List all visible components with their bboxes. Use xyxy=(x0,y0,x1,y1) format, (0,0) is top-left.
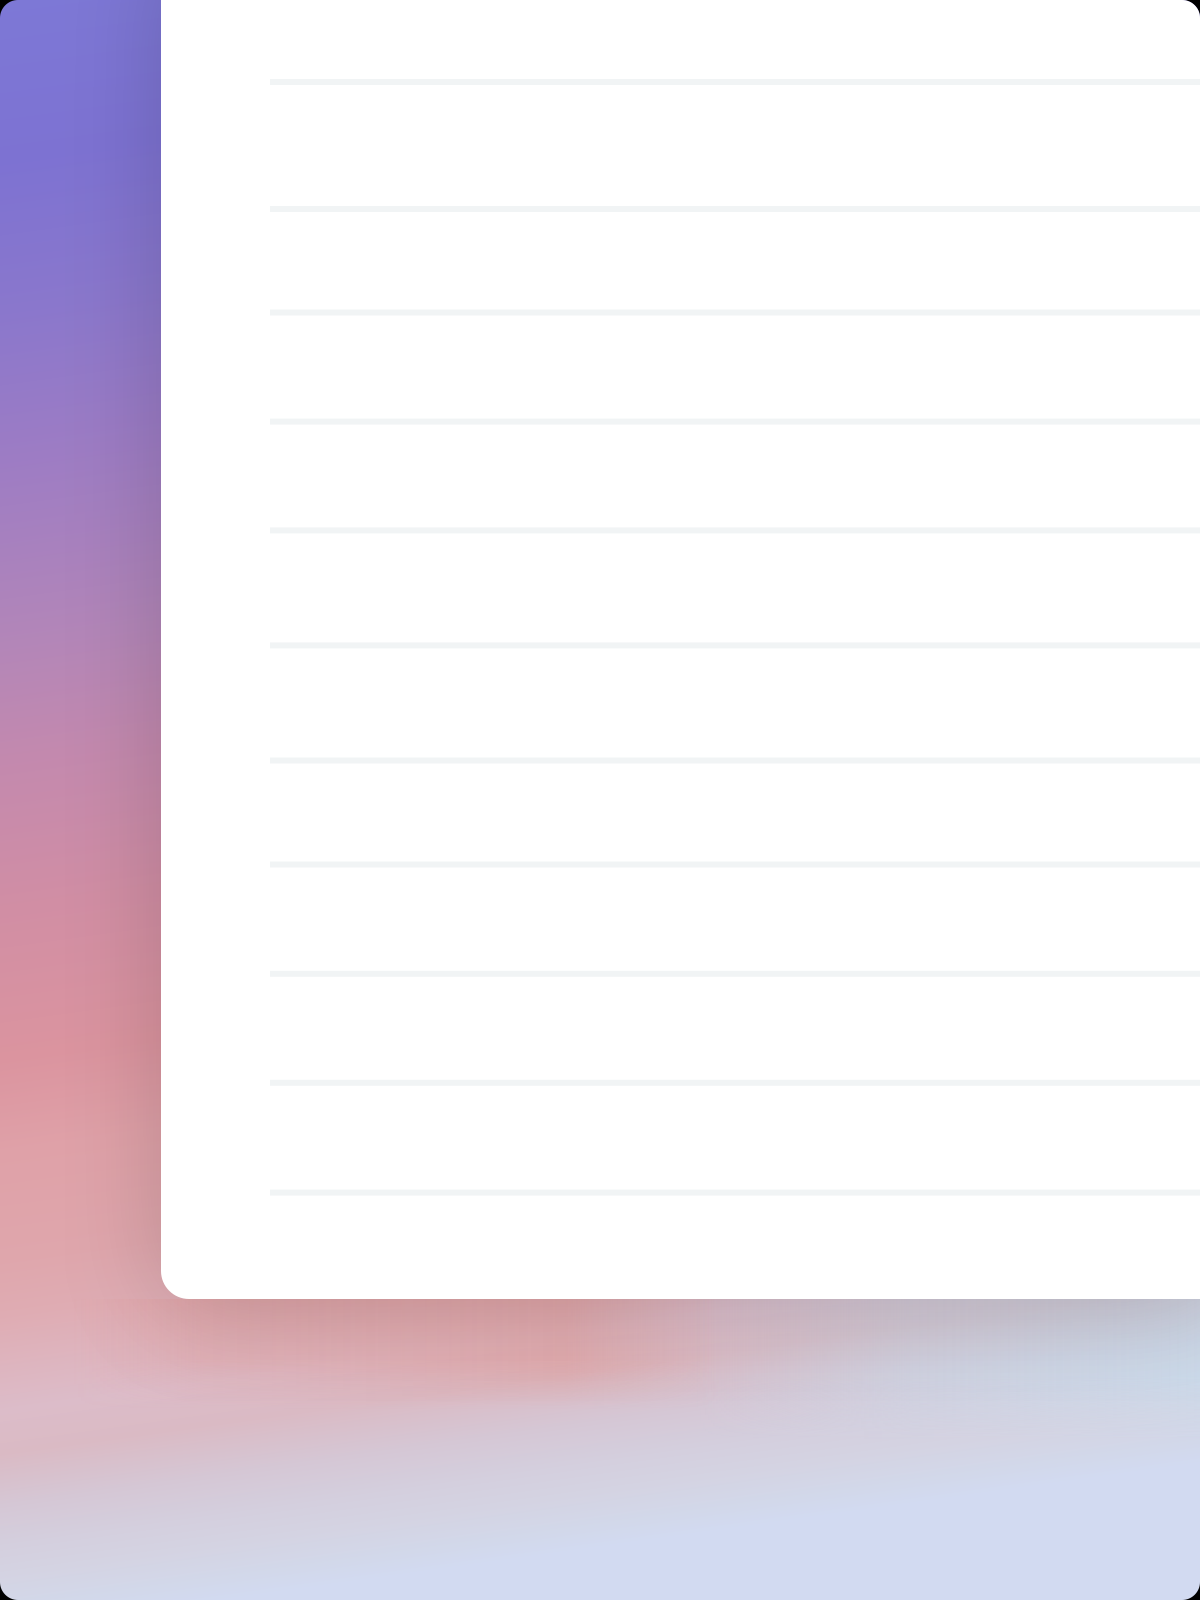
button[interactable] xyxy=(161,0,1200,85)
